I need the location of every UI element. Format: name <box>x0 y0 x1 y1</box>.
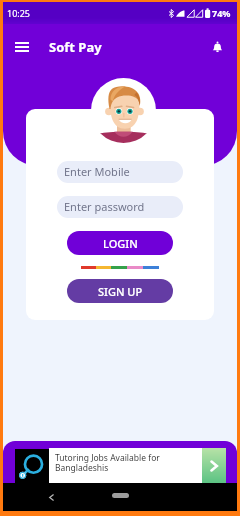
staticText: SIGN UP <box>98 284 143 299</box>
staticText: Tutoring Jobs Available for Bangladeshis <box>55 452 160 473</box>
button[interactable]: LOGIN <box>67 231 173 255</box>
staticText: Soft Pay <box>49 38 102 56</box>
button[interactable]: Back <box>43 489 59 505</box>
button[interactable]: Enter Mobile <box>57 161 183 183</box>
button[interactable]: Notifications <box>202 32 232 62</box>
button[interactable]: Tutoring Jobs Available for Bangladeshis <box>15 448 226 483</box>
staticText: 10:25 <box>7 7 31 19</box>
staticText: LOGIN <box>103 236 138 251</box>
staticText: 74% <box>212 7 231 19</box>
button[interactable]: Open ad <box>202 448 226 483</box>
staticText: Enter password <box>64 199 145 214</box>
button[interactable]: SIGN UP <box>67 279 173 303</box>
button[interactable]: Enter password <box>57 196 183 218</box>
staticText: Enter Mobile <box>64 164 130 179</box>
button[interactable]: Menu <box>7 32 37 62</box>
button[interactable]: Home <box>112 493 129 498</box>
